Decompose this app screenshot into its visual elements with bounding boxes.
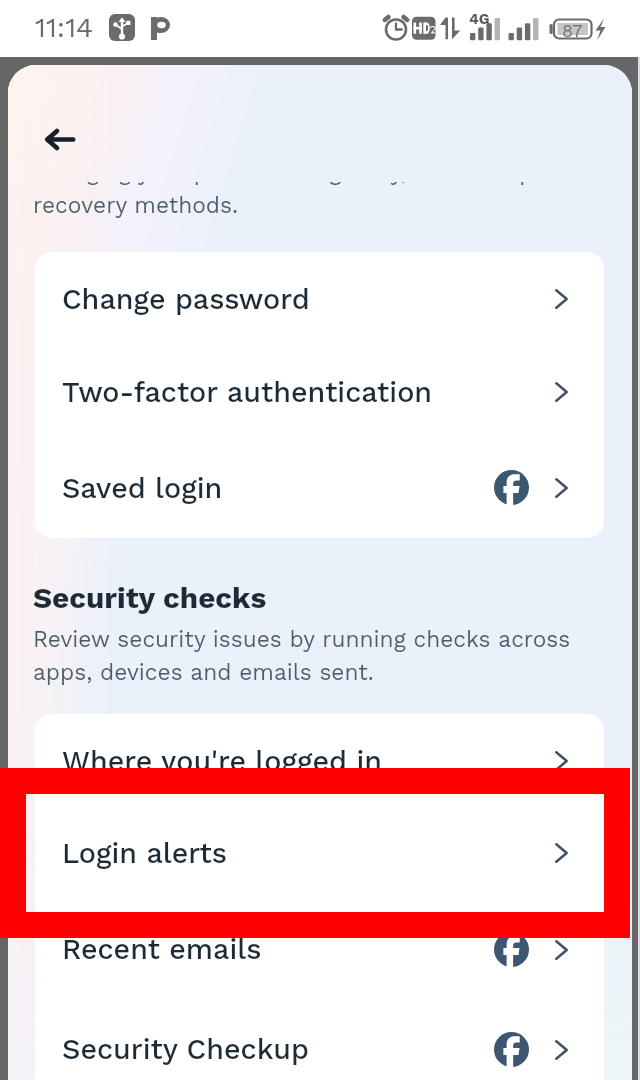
button[interactable]: Saved login — [35, 437, 604, 538]
staticText: Recent emails — [62, 932, 262, 966]
staticText: Review security issues by running checks… — [33, 626, 613, 686]
staticText: 87 — [562, 20, 583, 41]
button[interactable]: Where you're logged in — [35, 714, 604, 808]
staticText: Security checks — [33, 580, 267, 615]
button[interactable]: Back — [22, 101, 98, 177]
staticText: 4G — [469, 10, 490, 28]
staticText: Login alerts — [62, 836, 227, 870]
staticText: Security Checkup — [62, 1032, 310, 1066]
staticText: Where you're logged in — [62, 744, 383, 778]
button[interactable]: Two-factor authentication — [35, 346, 604, 437]
staticText: Change password — [62, 282, 310, 316]
button[interactable]: Login alerts — [35, 808, 604, 898]
staticText: changing your password regularly, and se… — [33, 182, 534, 219]
staticText: Two-factor authentication — [62, 375, 433, 409]
button[interactable]: Change password — [35, 252, 604, 346]
button[interactable]: Security Checkup — [35, 1000, 604, 1080]
staticText: 11:14 — [35, 11, 94, 44]
staticText: Saved login — [62, 471, 223, 505]
button[interactable]: Recent emails — [35, 898, 604, 1000]
